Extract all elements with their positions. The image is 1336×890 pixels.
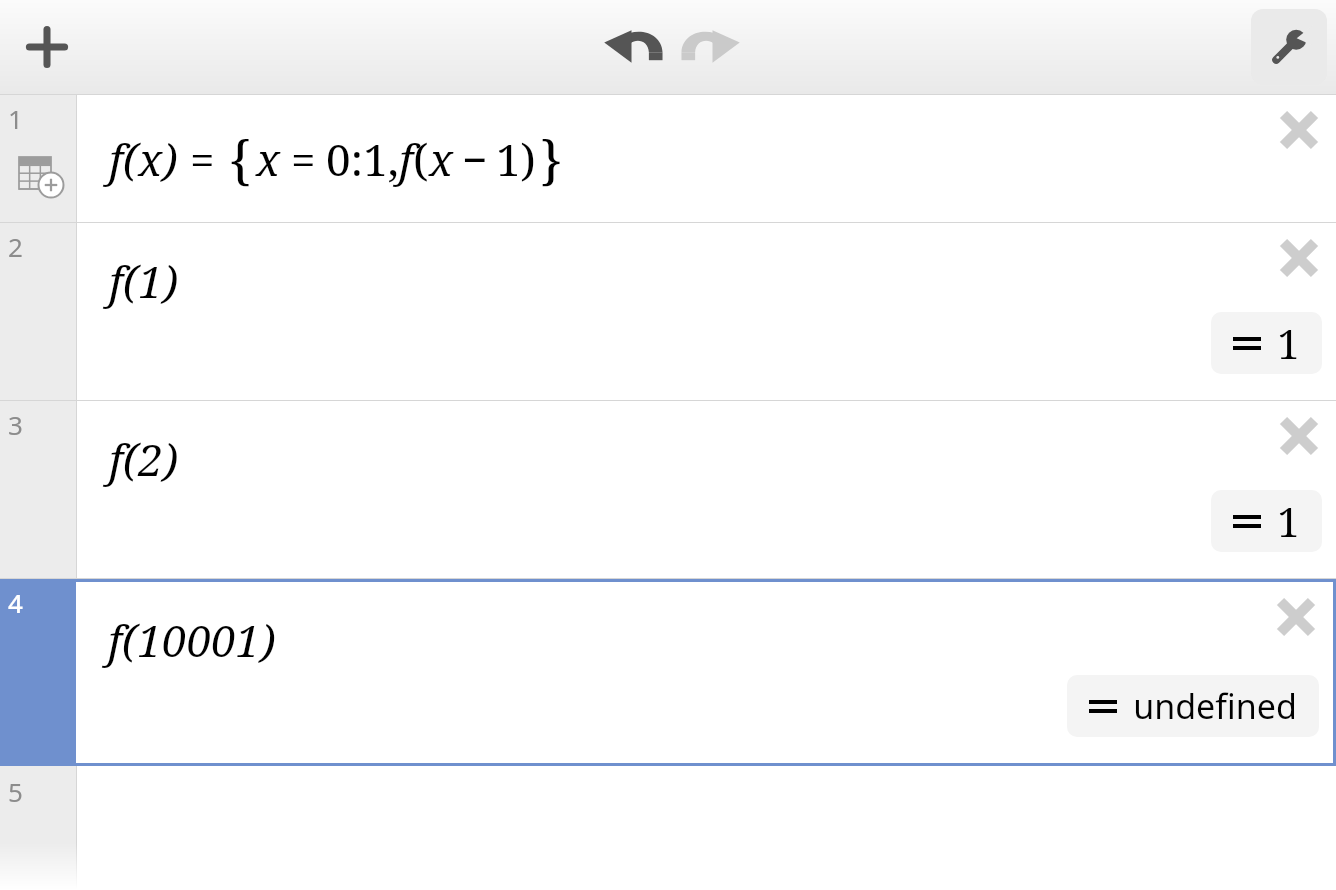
staticText: ( <box>413 129 429 189</box>
staticText: f(x) <box>109 129 178 189</box>
button[interactable]: Delete expression <box>1268 227 1330 289</box>
button[interactable]: Delete expression <box>1265 586 1327 648</box>
staticText: f(10001) <box>108 610 276 670</box>
button[interactable]: undefined <box>1067 675 1319 737</box>
staticText: f(1) <box>109 251 179 311</box>
staticText: f(2) <box>109 429 179 489</box>
staticText: 1 <box>8 101 23 136</box>
button[interactable]: 4 <box>0 579 1336 766</box>
button[interactable]: 1 <box>1211 490 1322 552</box>
staticText: f <box>399 129 413 189</box>
button[interactable]: Convert to table <box>12 146 70 204</box>
button[interactable]: Delete expression <box>1268 405 1330 467</box>
staticText: 4 <box>8 585 23 620</box>
staticText: } <box>540 123 563 194</box>
button[interactable]: 3 <box>0 401 1336 578</box>
staticText: − <box>462 129 488 189</box>
button[interactable]: 1 <box>0 95 1336 222</box>
staticText: undefined <box>1133 683 1297 729</box>
staticText: { <box>229 123 252 194</box>
button[interactable]: Undo <box>588 0 680 94</box>
button[interactable]: Redo <box>664 0 756 94</box>
staticText: 3 <box>8 407 23 442</box>
staticText: 1) <box>496 129 536 189</box>
staticText: 2 <box>8 229 23 264</box>
staticText: x <box>256 129 281 189</box>
button[interactable]: Settings <box>1251 9 1327 85</box>
button[interactable]: Add expression <box>0 0 94 94</box>
button[interactable]: 2 <box>0 223 1336 400</box>
staticText: 5 <box>8 774 23 809</box>
staticText: = <box>291 129 316 189</box>
staticText: 1 <box>1277 316 1300 370</box>
button[interactable]: Delete expression <box>1268 99 1330 161</box>
staticText: x <box>429 129 454 189</box>
button[interactable]: 1 <box>1211 312 1322 374</box>
staticText: 0:1, <box>326 129 399 189</box>
staticText: 1 <box>1277 494 1300 548</box>
staticText: = <box>190 129 215 189</box>
